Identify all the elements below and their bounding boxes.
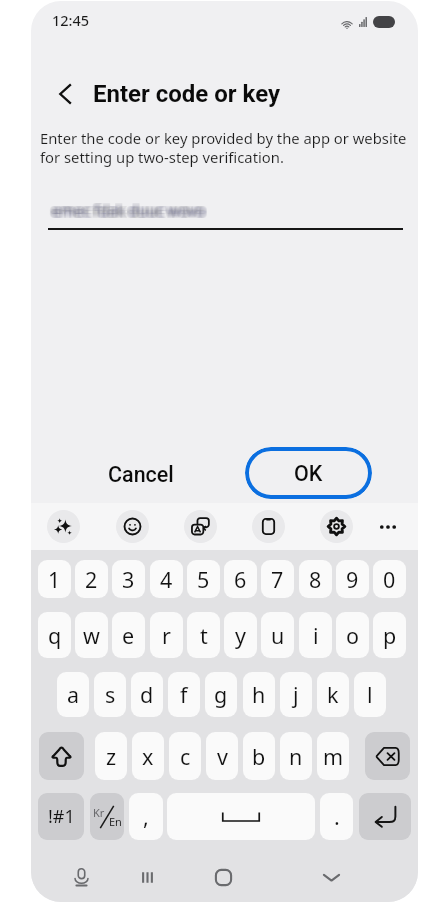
button[interactable]: x [132,732,164,780]
button[interactable]: Keyboard tool [252,510,285,543]
button[interactable]: j [280,672,312,717]
staticText: b [252,742,266,771]
staticText: emec fdak duuc wovo [55,199,208,219]
button[interactable]: l [354,672,386,717]
button[interactable]: t [187,612,220,658]
button[interactable]: shift [39,732,84,780]
button[interactable]: space [167,793,315,840]
staticText: emec fdak duuc wovo [55,202,208,222]
button[interactable]: v [206,732,238,780]
staticText: emec fdak duuc wovo [51,200,204,220]
staticText: emec fdak duuc wovo [52,201,205,221]
button[interactable]: 6 [224,560,257,598]
staticText: d [140,680,154,709]
button[interactable]: 1 [38,560,71,598]
staticText: emec fdak duuc wovo [53,198,206,218]
staticText: g [214,680,228,709]
staticText: emec fdak duuc wovo [54,198,207,218]
staticText: y [235,621,246,650]
staticText: i [313,621,319,650]
staticText: emec fdak duuc wovo [50,202,203,222]
staticText: emec fdak duuc wovo [52,199,205,219]
button[interactable]: 5 [187,560,220,598]
staticText: emec fdak duuc wovo [52,202,205,222]
button[interactable]: 8 [299,560,332,598]
staticText: f [180,680,188,709]
button[interactable]: Hide keyboard [314,860,348,894]
button[interactable]: , [129,793,163,840]
staticText: En [109,814,122,829]
staticText: emec fdak duuc wovo [52,198,205,218]
staticText: 8 [309,565,322,594]
button[interactable]: Keyboard tool [47,510,80,543]
staticText: l [367,680,373,709]
button[interactable]: c [169,732,201,780]
button[interactable]: d [131,672,163,717]
staticText: p [383,621,397,650]
button[interactable]: y [224,612,257,658]
button[interactable]: i [299,612,332,658]
staticText: 7 [271,565,284,594]
button[interactable]: n [280,732,312,780]
staticText: 6 [234,565,247,594]
button[interactable]: m [317,732,349,780]
staticText: emec fdak duuc wovo [54,199,207,219]
staticText: emec fdak duuc wovo [49,198,202,218]
button[interactable]: Keyboard tool [116,510,149,543]
staticText: k [327,680,339,709]
staticText: emec fdak duuc wovo [51,199,204,219]
button[interactable]: r [150,612,183,658]
button[interactable]: z [95,732,127,780]
staticText: emec fdak duuc wovo [49,198,202,218]
button[interactable]: Keyboard tool [320,510,353,543]
staticText: c [180,742,191,771]
button[interactable]: Voice input [64,860,98,894]
button[interactable]: lang [90,793,124,840]
staticText: 4 [160,565,173,594]
staticText: s [105,680,116,709]
button[interactable]: s [94,672,126,717]
button[interactable]: o [336,612,369,658]
staticText: emec fdak duuc wovo [50,199,203,219]
staticText: emec fdak duuc wovo [54,200,207,220]
staticText: emec fdak duuc wovo [55,201,208,221]
staticText: emec fdak duuc wovo [53,201,206,221]
button[interactable]: del [365,732,410,780]
button[interactable]: More options [372,511,404,543]
button[interactable]: f [168,672,200,717]
staticText: emec fdak duuc wovo [50,202,203,222]
button[interactable]: w [75,612,108,658]
button[interactable]: 4 [150,560,183,598]
button[interactable]: enter [359,793,411,840]
button[interactable]: a [57,672,89,717]
button[interactable]: !#1 [38,793,84,840]
button[interactable]: Cancel [90,451,192,498]
button[interactable]: h [243,672,275,717]
button[interactable]: b [243,732,275,780]
button[interactable]: k [317,672,349,717]
button[interactable]: . [320,793,353,840]
staticText: emec fdak duuc wovo [52,202,205,222]
button[interactable]: q [38,612,71,658]
staticText: a [67,680,80,709]
staticText: emec fdak duuc wovo [55,202,208,222]
staticText: m [323,742,344,771]
button[interactable]: p [373,612,406,658]
button[interactable]: Recent apps [130,860,164,894]
button[interactable]: Keyboard tool [184,510,217,543]
staticText: emec fdak duuc wovo [51,202,204,222]
button[interactable]: 2 [75,560,108,598]
button[interactable]: e [112,612,145,658]
staticText: emec fdak duuc wovo [52,198,205,218]
staticText: 1 [48,565,61,594]
button[interactable]: 7 [261,560,294,598]
button[interactable]: OK [245,447,372,499]
button[interactable]: 3 [112,560,145,598]
button[interactable]: u [261,612,294,658]
button[interactable]: 0 [373,560,406,598]
button[interactable]: Home [206,860,240,894]
button[interactable]: g [205,672,237,717]
staticText: emec fdak duuc wovo [53,199,206,219]
button[interactable]: Back [49,77,83,111]
button[interactable]: 9 [336,560,369,598]
